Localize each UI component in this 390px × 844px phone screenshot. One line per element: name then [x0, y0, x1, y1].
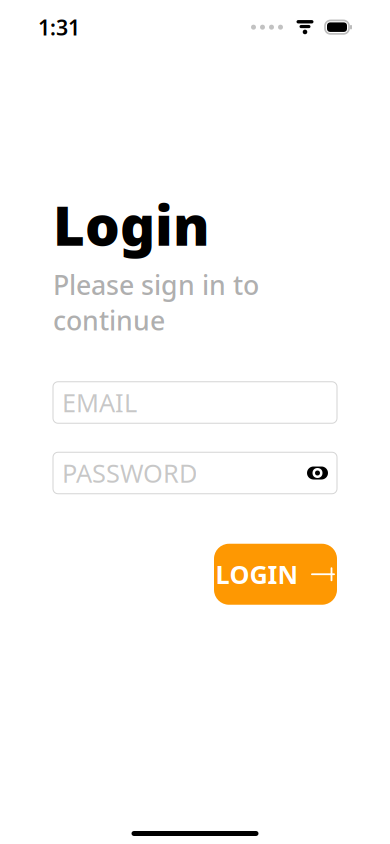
staticText: Please sign in to continue — [53, 267, 259, 338]
staticText: PASSWORD — [62, 456, 197, 490]
button[interactable]: PASSWORD — [53, 452, 337, 494]
button[interactable]: EMAIL — [53, 382, 337, 423]
button[interactable]: LOGIN — [214, 544, 337, 605]
staticText: LOGIN — [215, 557, 298, 591]
staticText: EMAIL — [62, 386, 137, 419]
staticText: Login — [53, 188, 210, 261]
staticText: 1:31 — [38, 13, 80, 41]
